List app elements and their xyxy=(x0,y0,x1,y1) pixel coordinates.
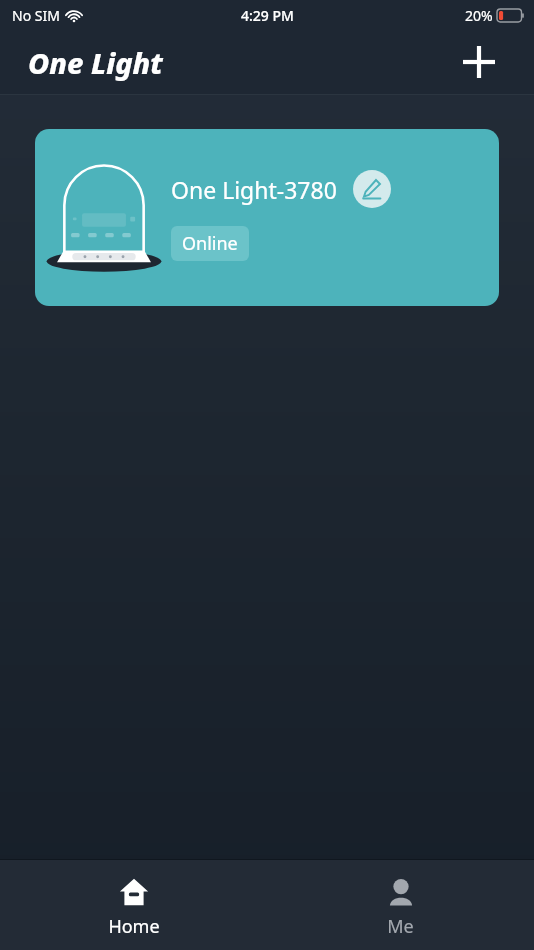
button[interactable]: Me xyxy=(267,860,534,950)
staticText: Online xyxy=(182,231,238,256)
staticText: No SIM xyxy=(12,6,60,25)
button[interactable]: Online xyxy=(182,231,238,256)
button[interactable]: One Light-3780 xyxy=(35,129,499,306)
staticText: One Light xyxy=(28,43,163,82)
staticText: One Light-3780 xyxy=(171,174,337,205)
button[interactable]: Rename device xyxy=(353,170,391,208)
button[interactable]: Home xyxy=(0,860,267,950)
staticText: Home xyxy=(108,914,160,939)
staticText: 20% xyxy=(465,6,493,25)
button[interactable]: Add device xyxy=(457,40,501,84)
staticText: 4:29 PM xyxy=(241,6,294,25)
staticText: Me xyxy=(387,914,414,939)
